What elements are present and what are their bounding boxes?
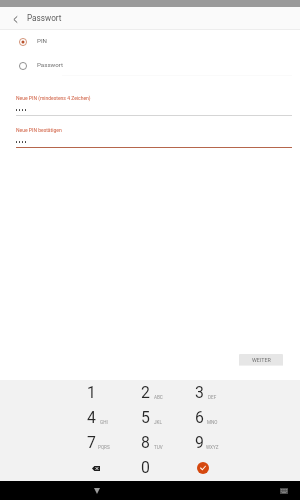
button[interactable]: 8: [118, 430, 172, 454]
button[interactable]: Confirm: [176, 456, 230, 480]
staticText: WEITER: [252, 357, 271, 363]
button[interactable]: 0: [118, 455, 172, 479]
button[interactable]: 7: [64, 430, 118, 454]
staticText: ABC: [154, 395, 163, 400]
button[interactable]: 1: [64, 380, 118, 404]
staticText: PIN: [37, 37, 48, 44]
button[interactable]: Passwort: [0, 59, 300, 72]
staticText: PQRS: [98, 445, 110, 450]
staticText: Passwort: [27, 13, 62, 23]
staticText: Passwort: [37, 61, 64, 68]
button[interactable]: Hide keyboard: [86, 481, 107, 500]
button[interactable]: Switch keyboard: [276, 483, 292, 499]
staticText: JKL: [154, 420, 162, 425]
button[interactable]: 6: [172, 405, 226, 429]
staticText: 9: [195, 433, 204, 452]
button[interactable]: 3: [172, 380, 226, 404]
button[interactable]: 4: [64, 405, 118, 429]
staticText: 7: [87, 433, 96, 452]
button[interactable]: 5: [118, 405, 172, 429]
staticText: 2: [141, 383, 150, 402]
staticText: 0: [141, 458, 150, 477]
staticText: 5: [141, 408, 150, 427]
staticText: MNO: [207, 420, 218, 425]
staticText: 1: [87, 383, 96, 402]
staticText: 4: [87, 408, 96, 427]
button[interactable]: WEITER: [239, 354, 283, 366]
staticText: WXYZ: [206, 445, 219, 450]
button[interactable]: Neue PIN bestätigen: [16, 127, 292, 148]
staticText: Neue PIN (mindestens 4 Zeichen): [16, 95, 91, 101]
staticText: 3: [195, 383, 204, 402]
button[interactable]: Backspace: [69, 456, 123, 480]
button[interactable]: 2: [118, 380, 172, 404]
button[interactable]: PIN: [0, 35, 300, 48]
button[interactable]: 9: [172, 430, 226, 454]
staticText: GHI: [100, 420, 108, 425]
staticText: 8: [141, 433, 150, 452]
staticText: 6: [195, 408, 204, 427]
staticText: TUV: [154, 445, 163, 450]
staticText: DEF: [208, 395, 217, 400]
button[interactable]: Back: [8, 12, 22, 26]
staticText: Neue PIN bestätigen: [16, 127, 62, 133]
button[interactable]: Neue PIN (mindestens 4 Zeichen): [16, 95, 292, 116]
